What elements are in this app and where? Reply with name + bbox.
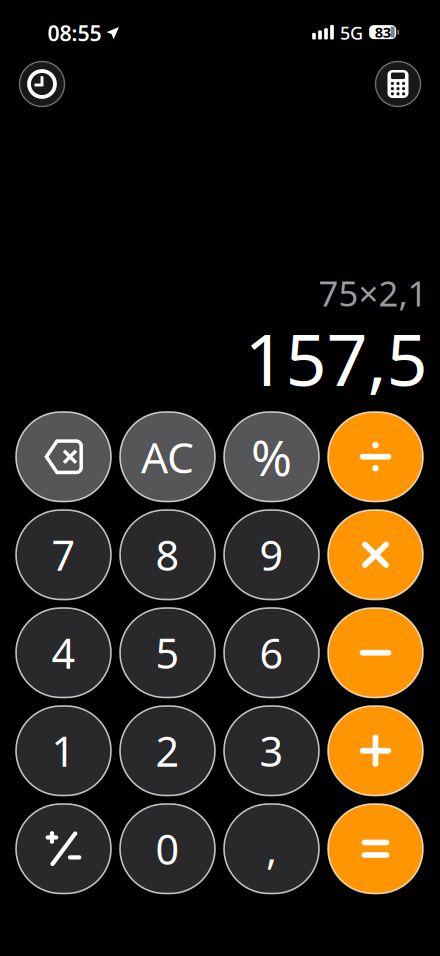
staticText: 4 xyxy=(51,625,75,681)
staticText: , xyxy=(266,821,277,877)
button[interactable]: 8 xyxy=(120,510,215,599)
staticText: 157,5 xyxy=(244,310,427,406)
button[interactable]: 9 xyxy=(224,510,319,599)
button[interactable]: 4 xyxy=(16,608,111,697)
button[interactable]: Multiply xyxy=(328,510,423,599)
button[interactable]: Decimal xyxy=(224,804,319,893)
button[interactable]: Subtract xyxy=(328,608,423,697)
button[interactable]: 5 xyxy=(120,608,215,697)
staticText: 1 xyxy=(51,723,75,779)
button[interactable]: 3 xyxy=(224,706,319,795)
button[interactable]: 1 xyxy=(16,706,111,795)
button[interactable]: History xyxy=(19,61,64,106)
staticText: 0 xyxy=(155,821,179,877)
staticText: 2 xyxy=(155,723,179,779)
staticText: 75×2,1 xyxy=(318,270,427,316)
button[interactable]: AC xyxy=(120,412,215,501)
staticText: 08:55 xyxy=(47,18,101,48)
button[interactable]: % xyxy=(224,412,319,501)
staticText: 3 xyxy=(259,723,283,779)
button[interactable]: Delete xyxy=(16,412,111,501)
staticText: 5G xyxy=(340,20,363,45)
staticText: 83 xyxy=(375,22,391,42)
button[interactable]: Plus minus xyxy=(16,804,111,893)
button[interactable]: Divide xyxy=(328,412,423,501)
staticText: % xyxy=(251,423,292,490)
button[interactable]: 2 xyxy=(120,706,215,795)
button[interactable]: Add xyxy=(328,706,423,795)
staticText: 7 xyxy=(51,527,75,583)
staticText: 8 xyxy=(155,527,179,583)
staticText: 6 xyxy=(259,625,283,681)
button[interactable]: 6 xyxy=(224,608,319,697)
staticText: 9 xyxy=(259,527,283,583)
staticText: 5 xyxy=(155,625,179,681)
button[interactable]: Equals xyxy=(328,804,423,893)
button[interactable]: Calculator mode xyxy=(375,61,420,106)
button[interactable]: 7 xyxy=(16,510,111,599)
button[interactable]: 0 xyxy=(120,804,215,893)
staticText: AC xyxy=(141,428,194,486)
